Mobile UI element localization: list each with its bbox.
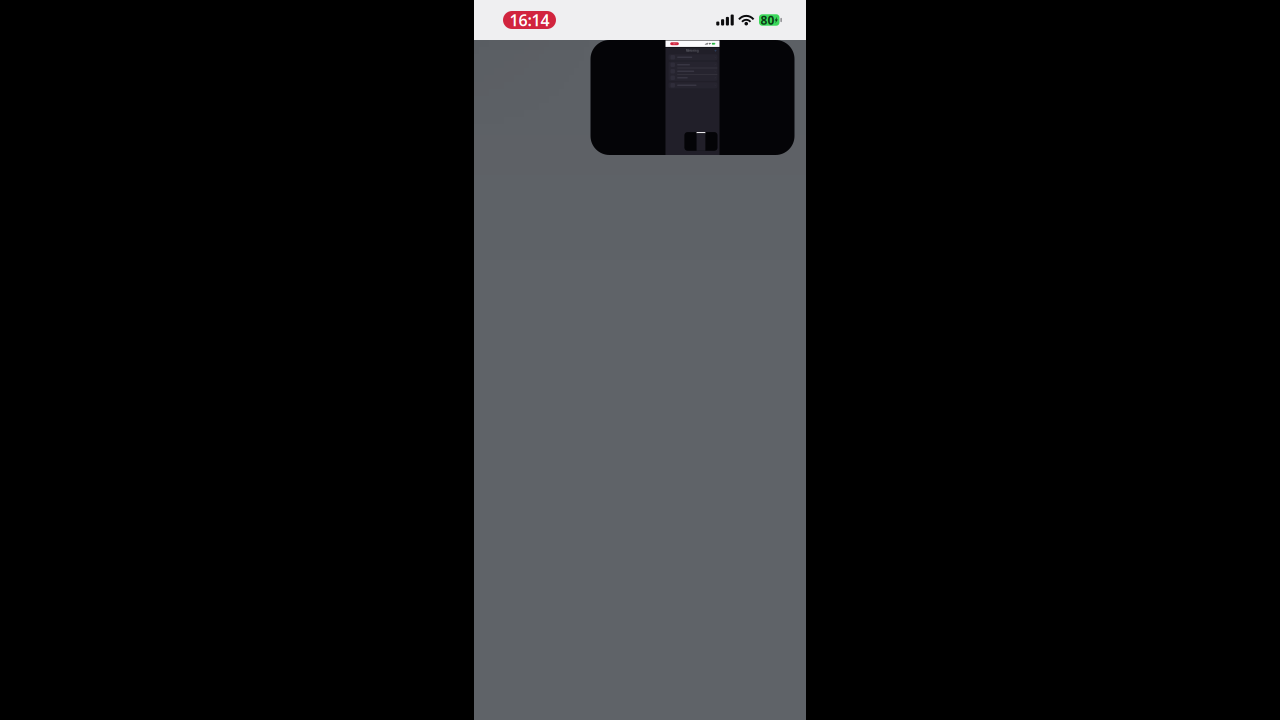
button[interactable]	[669, 75, 717, 81]
button[interactable]	[669, 54, 717, 60]
staticText: Mirroring	[686, 49, 699, 53]
staticText: 80	[760, 12, 774, 28]
button[interactable]: Stop screen recording, 16:14	[670, 42, 679, 45]
button[interactable]	[669, 82, 717, 88]
button[interactable]: Add device	[714, 50, 719, 52]
staticText: 16:14	[672, 43, 676, 45]
staticText: 16:14	[509, 9, 549, 31]
staticText: 80	[712, 43, 714, 45]
button[interactable]	[669, 62, 717, 68]
button[interactable]	[669, 68, 717, 74]
button[interactable]: Stop screen recording, 16:14	[503, 11, 556, 29]
button[interactable]: Mirrored iPhone screen	[590, 40, 794, 155]
